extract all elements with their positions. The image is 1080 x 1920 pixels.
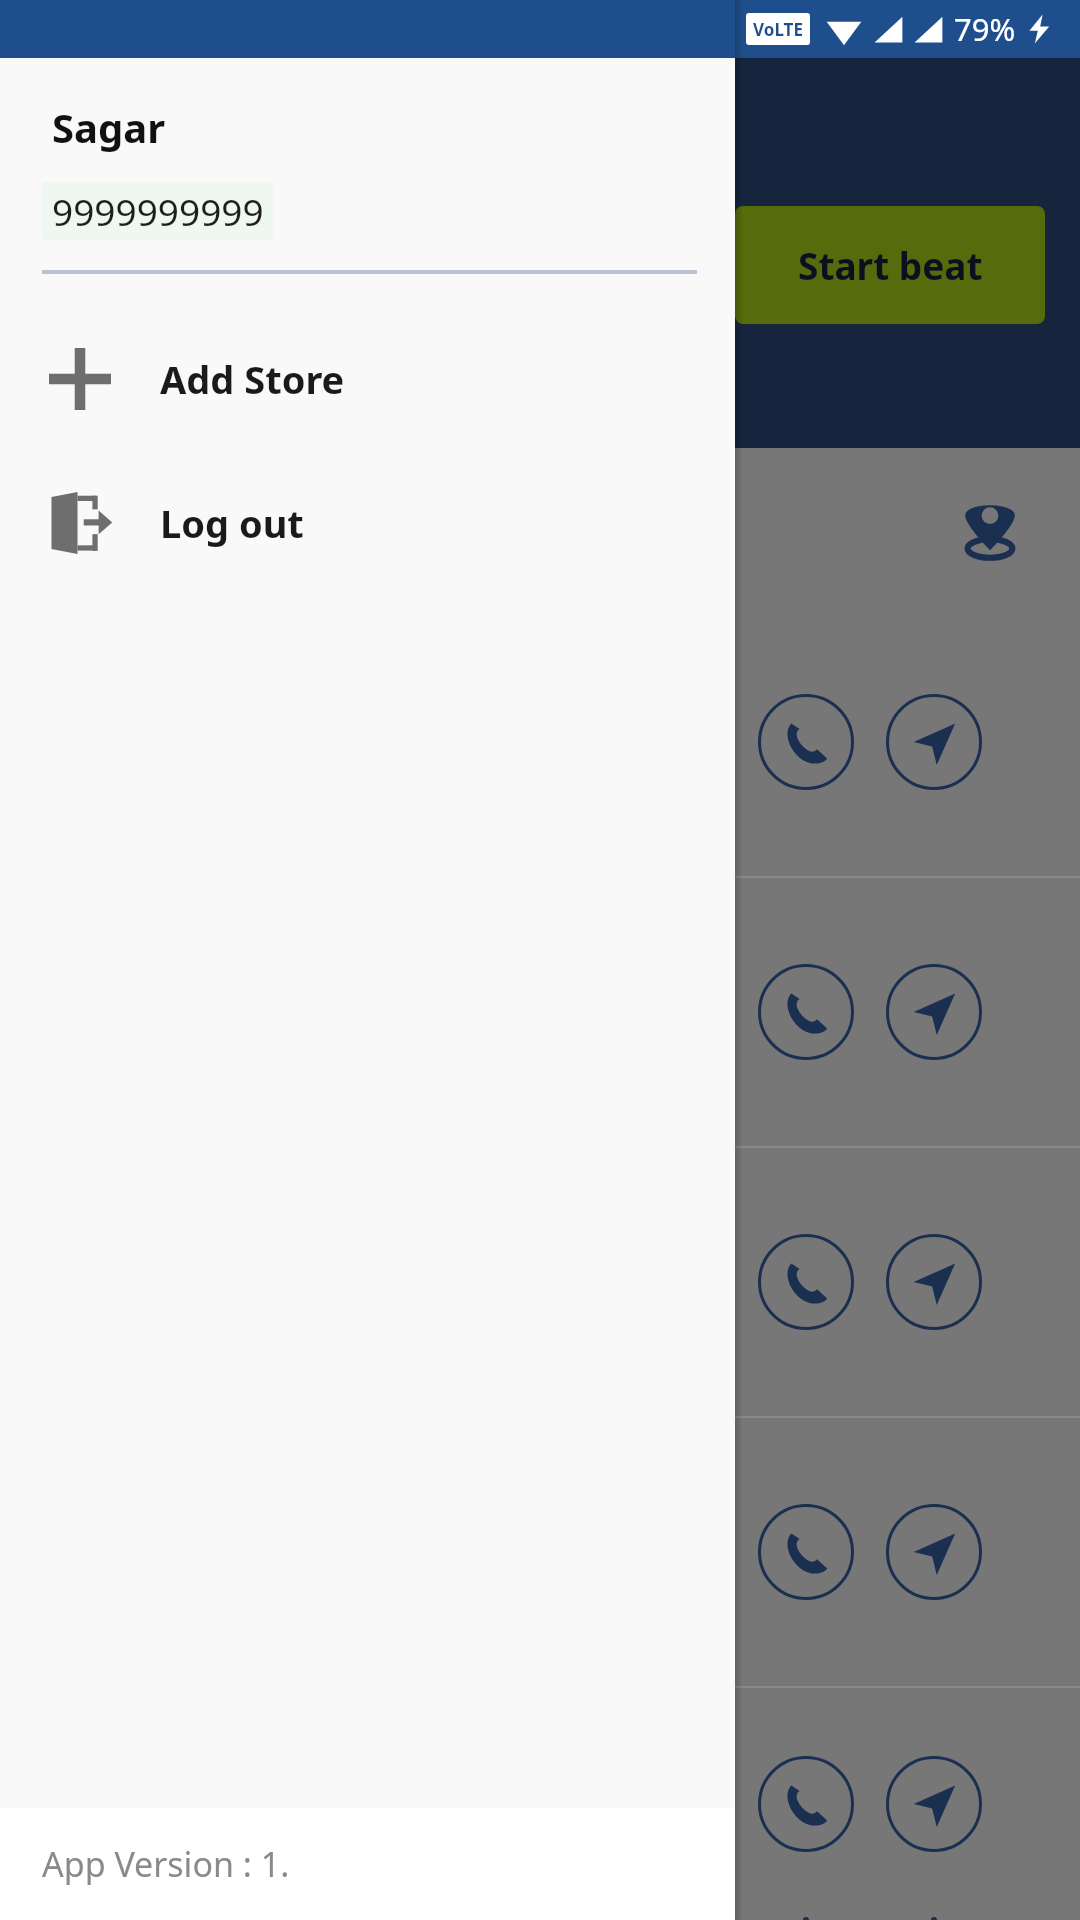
button[interactable]: Navigate [886, 964, 982, 1060]
staticText: Start beat [798, 240, 983, 290]
button[interactable]: Location [955, 493, 1025, 563]
staticText: Sagar [52, 100, 166, 154]
staticText: 79% [954, 8, 1016, 50]
button[interactable]: Navigate [886, 1756, 982, 1852]
button[interactable]: Call [758, 1504, 854, 1600]
staticText: App Version : 1. [42, 1841, 290, 1887]
button[interactable]: Call [758, 1756, 854, 1852]
button[interactable]: Navigate [886, 1234, 982, 1330]
button[interactable]: Call [758, 964, 854, 1060]
button[interactable]: Call [758, 1234, 854, 1330]
staticText: Add Store [160, 353, 345, 405]
button[interactable]: Call [758, 694, 854, 790]
staticText: Log out [160, 497, 304, 549]
button[interactable]: Add Store [0, 336, 735, 422]
staticText: 9999999999 [52, 186, 264, 236]
button[interactable]: Start beat [735, 206, 1045, 324]
staticText: VoLTE [753, 18, 803, 41]
button[interactable]: Navigate [886, 694, 982, 790]
button[interactable]: Log out [0, 480, 735, 566]
button[interactable]: Navigate [886, 1504, 982, 1600]
